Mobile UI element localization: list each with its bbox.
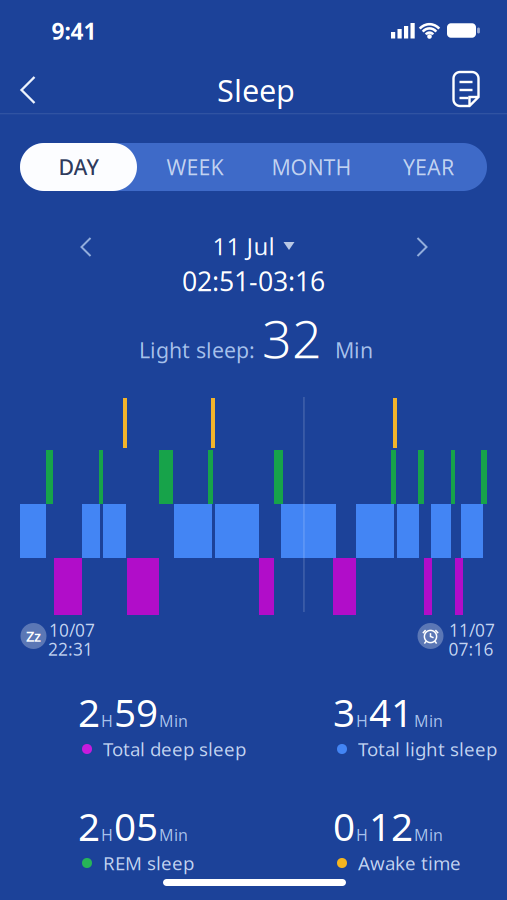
staticText: Min [159,824,188,845]
staticText: 59 [114,686,158,738]
staticText: 9:41 [51,16,96,46]
staticText: Min [414,710,443,731]
staticText: H [101,710,113,731]
staticText: 02:51-03:16 [182,263,325,299]
staticText: 41 [369,686,413,738]
staticText: REM sleep [103,851,194,875]
staticText: Sleep [217,70,295,110]
staticText: Awake time [358,851,461,875]
staticText: 2 [78,800,100,852]
staticText: H [356,824,368,845]
staticText: 2 [78,686,100,738]
button[interactable]: Back [11,67,44,113]
button[interactable]: Next day [407,228,436,266]
staticText: 11 Jul [212,230,274,262]
staticText: 32 [262,303,322,373]
button[interactable]: WEEK [137,143,253,191]
staticText: Light sleep: [139,336,255,364]
staticText: H [356,710,368,731]
staticText: WEEK [166,153,223,181]
staticText: Zz [26,626,41,646]
button[interactable]: DAY [20,143,137,191]
button[interactable]: MONTH [253,143,370,191]
staticText: H [101,824,113,845]
staticText: 05 [114,800,158,852]
staticText: 3 [333,686,355,738]
button[interactable]: Previous day [71,228,100,266]
staticText: 11/07 [449,618,495,641]
button[interactable]: YEAR [370,143,487,191]
staticText: 10/07 [49,618,95,641]
staticText: 07:16 [448,637,493,660]
staticText: YEAR [403,153,454,181]
staticText: Min [335,336,373,364]
staticText: Total deep sleep [103,737,246,761]
button[interactable]: Sleep notes [445,64,486,114]
staticText: Min [159,710,188,731]
staticText: Min [414,824,443,845]
staticText: 22:31 [48,637,93,660]
button[interactable]: Choose date [212,230,294,262]
staticText: Total light sleep [358,737,497,761]
staticText: DAY [58,153,98,181]
staticText: 12 [369,800,413,852]
staticText: MONTH [271,153,351,181]
staticText: 0 [333,800,355,852]
